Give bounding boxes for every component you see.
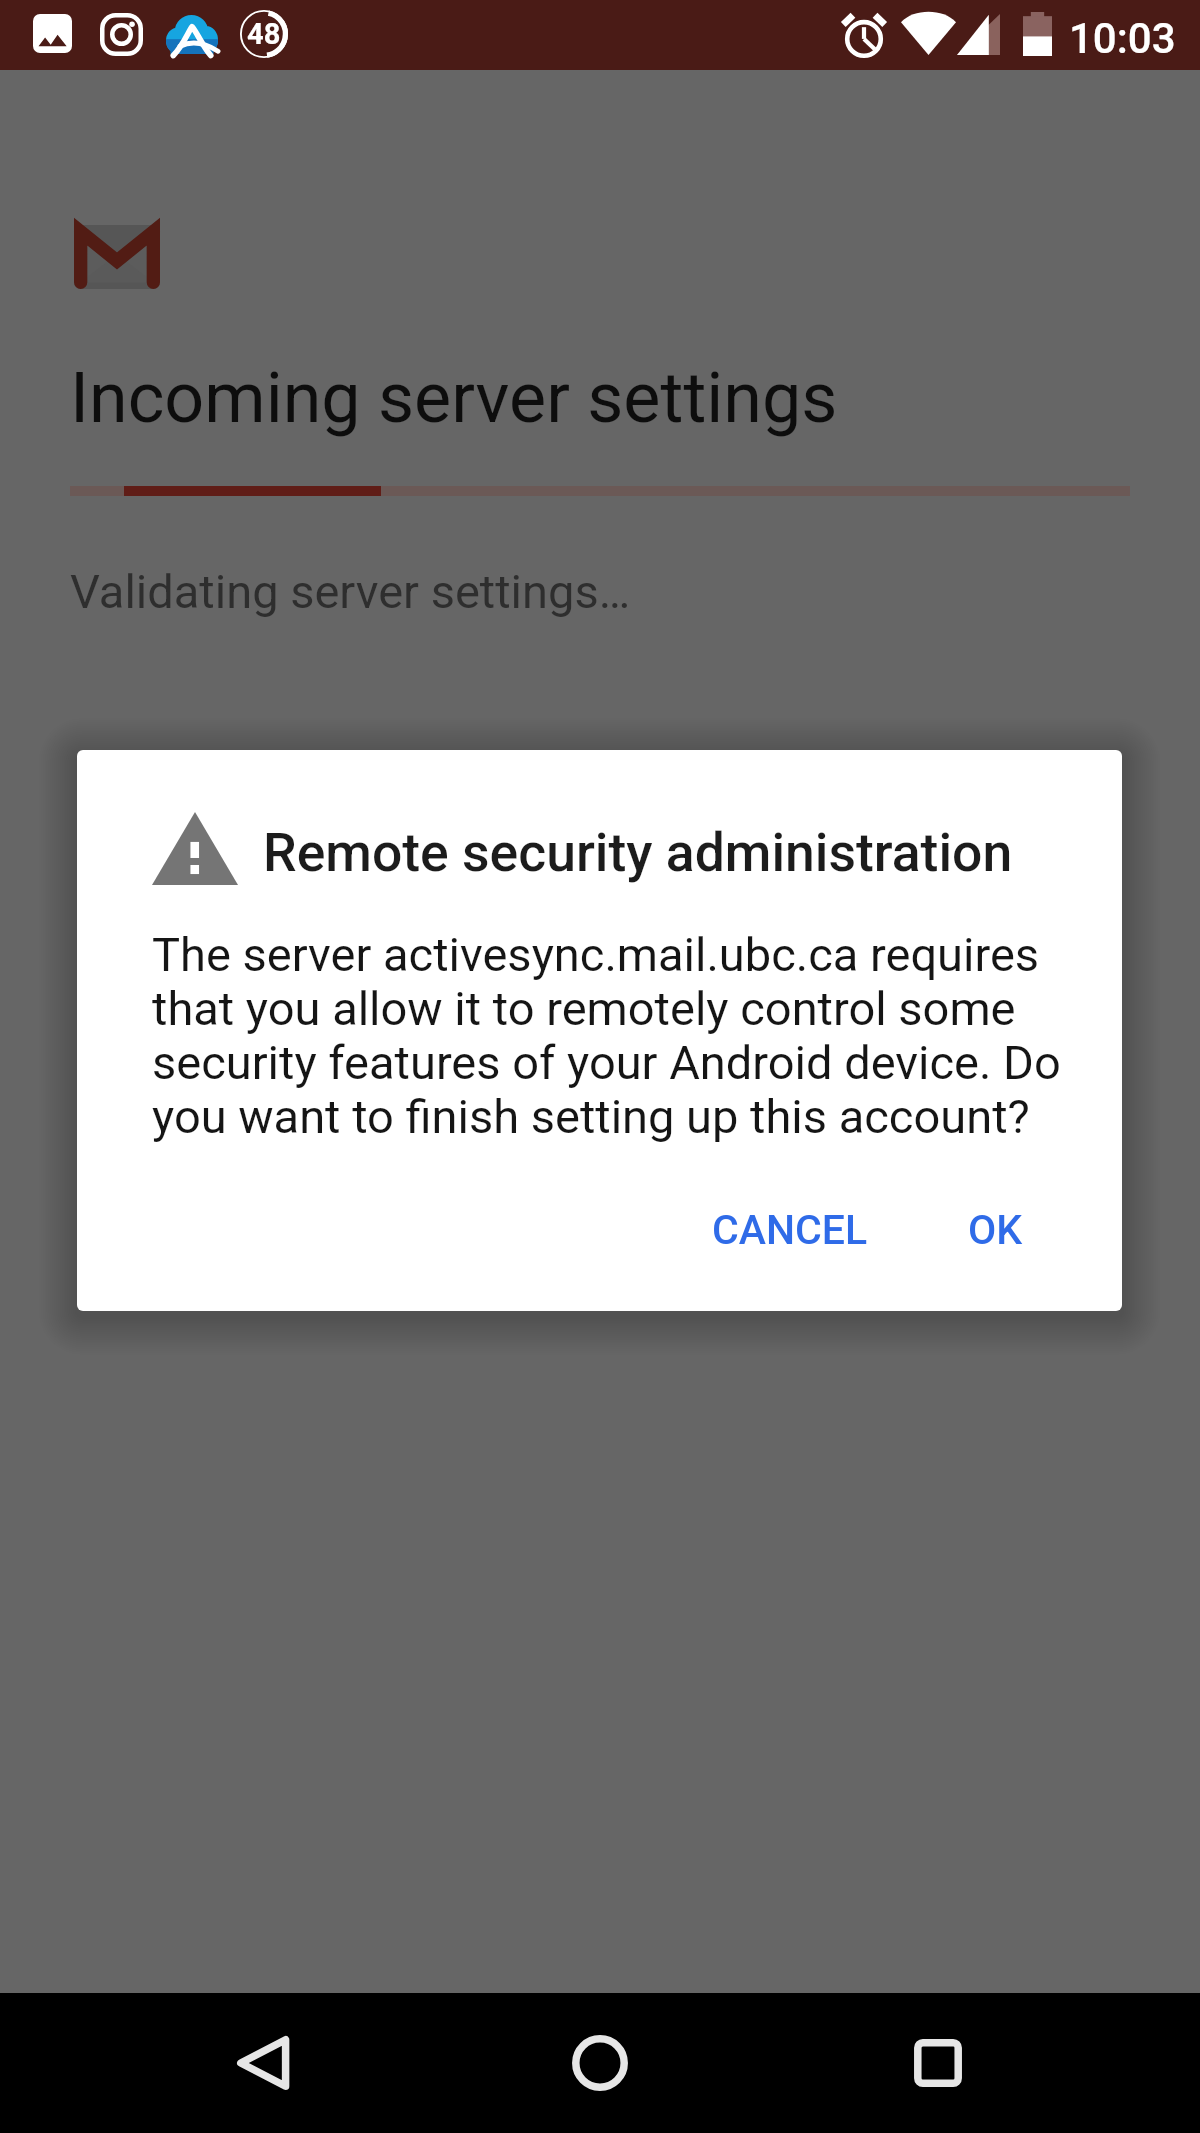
staticText: Remote security administration: [263, 821, 1013, 884]
staticText: The server activesync.mail.ubc.ca requir…: [152, 928, 1077, 1144]
staticText: CANCEL: [712, 1206, 868, 1254]
staticText: Validating server settings…: [70, 564, 631, 619]
staticText: Incoming server settings: [70, 357, 838, 439]
staticText: OK: [968, 1206, 1023, 1254]
button[interactable]: CANCEL: [682, 1188, 898, 1272]
staticText: 10:03: [1069, 14, 1176, 63]
staticText: 48: [247, 17, 281, 51]
button[interactable]: Recent apps: [858, 1993, 1018, 2133]
button[interactable]: Back: [184, 1993, 344, 2133]
button[interactable]: Home: [520, 1993, 680, 2133]
button[interactable]: OK: [938, 1188, 1053, 1272]
